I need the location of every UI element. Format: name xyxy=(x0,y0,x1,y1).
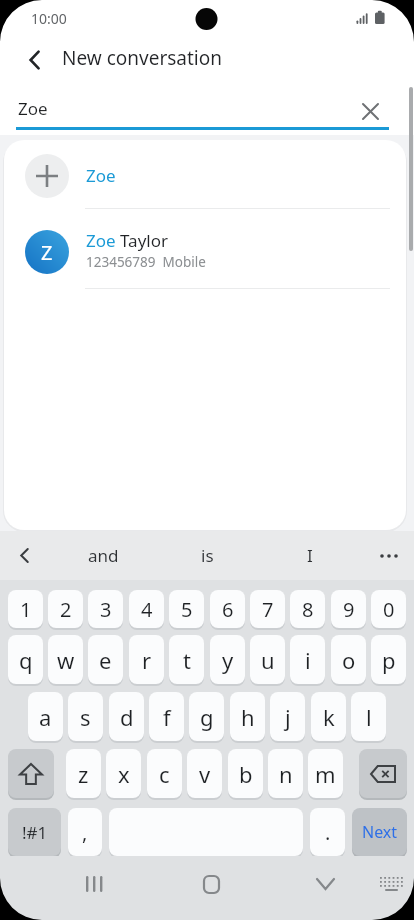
button[interactable]: . xyxy=(310,808,345,856)
button[interactable]: Z xyxy=(4,222,406,287)
staticText: f xyxy=(163,702,171,732)
button[interactable]: Next xyxy=(352,808,407,856)
staticText: t xyxy=(183,645,191,675)
button[interactable]: I xyxy=(265,531,355,580)
staticText: s xyxy=(80,702,91,732)
staticText: j xyxy=(285,702,291,732)
staticText: v xyxy=(199,759,211,789)
staticText: 9 xyxy=(343,596,355,623)
staticText: 2 xyxy=(60,596,72,623)
staticText: 8 xyxy=(302,596,314,623)
staticText: 1 xyxy=(20,596,32,623)
button[interactable]: and xyxy=(58,531,148,580)
button[interactable]: g xyxy=(189,692,224,741)
button[interactable]: y xyxy=(210,635,245,684)
button[interactable] xyxy=(8,749,54,798)
button[interactable] xyxy=(18,43,52,77)
staticText: and xyxy=(88,544,119,567)
staticText: Zoe xyxy=(86,164,116,187)
staticText: Zoe Taylor xyxy=(86,229,169,252)
button[interactable]: 7 xyxy=(250,590,285,628)
staticText: m xyxy=(315,759,336,789)
staticText: w xyxy=(57,645,75,675)
button[interactable] xyxy=(369,535,409,576)
staticText: c xyxy=(159,759,170,789)
staticText: n xyxy=(279,759,293,789)
button[interactable]: w xyxy=(48,635,83,684)
button[interactable]: l xyxy=(351,692,386,741)
staticText: 0 xyxy=(383,596,395,623)
staticText: 10:00 xyxy=(31,9,67,28)
staticText: p xyxy=(382,645,396,675)
staticText: 6 xyxy=(222,596,234,623)
button[interactable] xyxy=(352,93,388,129)
button[interactable]: j xyxy=(270,692,305,741)
staticText: y xyxy=(222,645,234,675)
button[interactable]: 6 xyxy=(210,590,245,628)
button[interactable] xyxy=(191,864,231,904)
button[interactable]: k xyxy=(311,692,346,741)
button[interactable] xyxy=(74,864,114,904)
staticText: e xyxy=(99,645,112,675)
button[interactable] xyxy=(371,864,411,904)
button[interactable] xyxy=(4,535,44,576)
button[interactable]: t xyxy=(169,635,204,684)
button[interactable]: z xyxy=(66,749,101,798)
button[interactable]: 4 xyxy=(129,590,164,628)
staticText: x xyxy=(118,759,130,789)
staticText: u xyxy=(261,645,275,675)
button[interactable]: h xyxy=(230,692,265,741)
button[interactable]: , xyxy=(68,808,102,856)
staticText: , xyxy=(82,819,88,846)
staticText: !#1 xyxy=(22,821,48,844)
button[interactable]: Zoe xyxy=(4,154,406,214)
button[interactable]: p xyxy=(371,635,406,684)
button[interactable]: i xyxy=(290,635,325,684)
button[interactable]: q xyxy=(8,635,43,684)
button[interactable]: m xyxy=(308,749,343,798)
staticText: Next xyxy=(362,821,398,843)
button[interactable]: s xyxy=(68,692,103,741)
button[interactable]: v xyxy=(187,749,222,798)
button[interactable]: 3 xyxy=(88,590,123,628)
staticText: k xyxy=(323,702,335,732)
button[interactable]: x xyxy=(106,749,141,798)
button[interactable]: d xyxy=(109,692,144,741)
button[interactable]: a xyxy=(28,692,63,741)
staticText: 4 xyxy=(141,596,153,623)
button[interactable] xyxy=(305,864,345,904)
button[interactable]: 8 xyxy=(290,590,325,628)
staticText: 3 xyxy=(100,596,112,623)
button[interactable]: r xyxy=(129,635,164,684)
button[interactable]: o xyxy=(331,635,366,684)
button[interactable]: !#1 xyxy=(8,808,61,856)
button[interactable]: e xyxy=(88,635,123,684)
button[interactable]: is xyxy=(162,531,252,580)
staticText: New conversation xyxy=(62,45,222,71)
button[interactable]: 1 xyxy=(8,590,43,628)
staticText: z xyxy=(78,759,89,789)
staticText: Zoe xyxy=(18,97,48,120)
button[interactable] xyxy=(359,749,407,798)
staticText: a xyxy=(39,702,52,732)
staticText: is xyxy=(201,544,214,567)
button[interactable]: f xyxy=(149,692,184,741)
staticText: h xyxy=(241,702,255,732)
button[interactable]: u xyxy=(250,635,285,684)
button[interactable]: 9 xyxy=(331,590,366,628)
staticText: q xyxy=(19,645,33,675)
button[interactable]: b xyxy=(228,749,263,798)
staticText: l xyxy=(366,702,372,732)
button[interactable]: 0 xyxy=(371,590,406,628)
button[interactable]: 2 xyxy=(48,590,83,628)
staticText: I xyxy=(307,544,313,567)
button[interactable]: c xyxy=(147,749,182,798)
staticText: i xyxy=(305,645,311,675)
staticText: g xyxy=(200,702,214,732)
button[interactable]: n xyxy=(268,749,303,798)
staticText: o xyxy=(342,645,356,675)
staticText: 123456789 Mobile xyxy=(86,253,206,271)
button[interactable]: 5 xyxy=(169,590,204,628)
staticText: r xyxy=(142,645,152,675)
